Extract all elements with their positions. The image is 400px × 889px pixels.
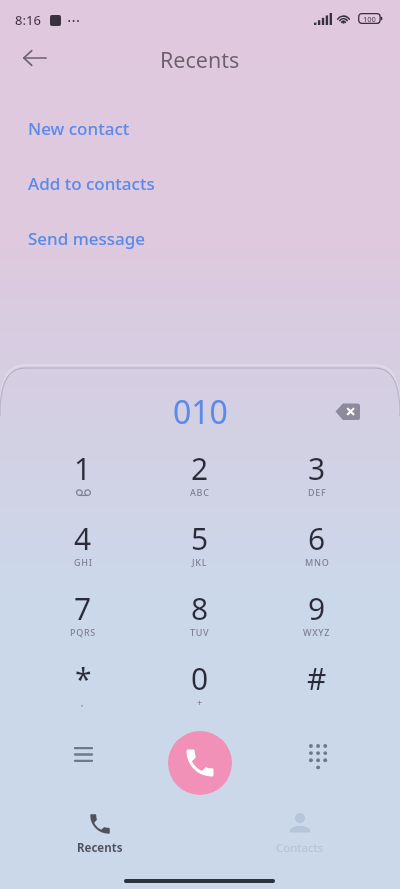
staticText: 7 [74,588,92,629]
staticText: JKL [192,556,208,568]
button[interactable]: Send message [0,211,400,266]
button[interactable]: * [43,658,123,714]
staticText: 0 [191,658,209,699]
button[interactable]: 7 [43,588,123,644]
staticText: DEF [308,486,327,498]
staticText: 2 [191,448,209,489]
button[interactable]: 1 [43,448,123,504]
button[interactable]: 6 [277,518,357,574]
staticText: Contacts [276,840,324,856]
staticText: Recents [77,840,123,856]
staticText: + [197,696,203,708]
button[interactable]: 8 [160,588,240,644]
staticText: WXYZ [303,626,331,638]
staticText: ABC [190,486,210,498]
staticText: 5 [191,518,209,559]
button[interactable]: New contact [0,101,400,156]
staticText: 100 [363,14,376,24]
button[interactable]: Call log [61,732,105,776]
staticText: * [75,658,92,699]
staticText: Recents [160,45,240,74]
staticText: 9 [308,588,326,629]
staticText: 010 [173,390,228,434]
button[interactable]: Recents [0,806,200,862]
button[interactable]: Call [168,731,232,795]
staticText: Send message [28,227,146,250]
staticText: New contact [28,117,130,140]
button[interactable]: Dialpad [295,733,339,777]
staticText: , [81,696,85,708]
staticText: 6 [308,518,326,559]
staticText: 1 [74,448,92,489]
staticText: PQRS [70,626,96,638]
staticText: 4 [74,518,92,559]
button[interactable]: 9 [277,588,357,644]
button[interactable]: Back [12,36,56,80]
button[interactable]: 5 [160,518,240,574]
button[interactable]: 3 [277,448,357,504]
staticText: 3 [308,448,326,489]
button[interactable]: # [277,658,357,714]
staticText: Add to contacts [28,172,155,195]
staticText: TUV [190,626,210,638]
button[interactable]: 2 [160,448,240,504]
button[interactable]: 4 [43,518,123,574]
button[interactable]: Backspace [328,392,366,430]
staticText: # [307,658,327,699]
staticText: MNO [305,556,330,568]
staticText: GHI [74,556,93,568]
button[interactable]: Add to contacts [0,156,400,211]
staticText: 8 [191,588,209,629]
button[interactable]: 0 [160,658,240,714]
button[interactable]: Contacts [200,806,400,862]
staticText: 8:16 [15,11,41,29]
